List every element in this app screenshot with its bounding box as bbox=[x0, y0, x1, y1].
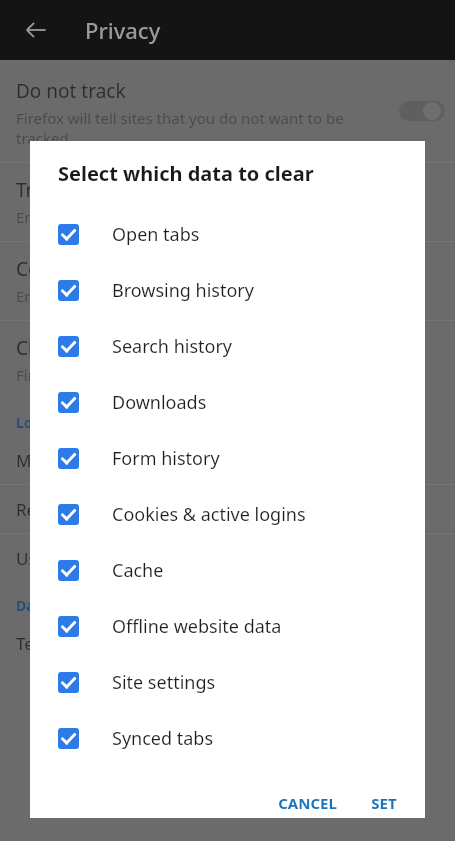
staticText: Form history bbox=[112, 446, 220, 471]
staticText: CANCEL bbox=[278, 793, 337, 810]
staticText: Telemetry bbox=[16, 632, 96, 655]
button[interactable]: Manage logins bbox=[0, 436, 455, 484]
button[interactable]: Request desktop site bbox=[0, 485, 455, 533]
staticText: Downloads bbox=[112, 390, 207, 415]
button[interactable]: Usage data bbox=[0, 534, 455, 582]
button[interactable]: Cache bbox=[30, 542, 425, 598]
staticText: Synced tabs bbox=[112, 726, 214, 751]
staticText: Browsing history bbox=[112, 278, 254, 303]
button[interactable]: Downloads bbox=[30, 374, 425, 430]
button[interactable]: Open tabs bbox=[30, 206, 425, 262]
staticText: Firefox will tell sites that you do not … bbox=[16, 108, 385, 148]
staticText: Clear private data bbox=[16, 335, 175, 361]
staticText: Privacy bbox=[85, 15, 161, 45]
staticText: Usage data bbox=[16, 547, 107, 570]
staticText: Firefox will delete the data that you se… bbox=[16, 365, 313, 385]
button[interactable]: Cookies & active logins bbox=[30, 486, 425, 542]
button[interactable]: Form history bbox=[30, 430, 425, 486]
button[interactable]: Back bbox=[12, 6, 60, 54]
staticText: Open tabs bbox=[112, 222, 200, 247]
button[interactable]: Browsing history bbox=[30, 262, 425, 318]
staticText: Select which data to clear bbox=[58, 160, 314, 187]
staticText: Request desktop site bbox=[16, 498, 183, 521]
staticText: SET bbox=[371, 793, 397, 810]
staticText: Cookies bbox=[16, 256, 86, 282]
staticText: Cookies & active logins bbox=[112, 502, 306, 527]
staticText: Manage logins bbox=[16, 449, 134, 472]
staticText: Offline website data bbox=[112, 614, 282, 639]
button[interactable]: Clear private data bbox=[0, 321, 455, 399]
button[interactable]: Do not track bbox=[0, 60, 455, 162]
button[interactable]: Site settings bbox=[30, 654, 425, 710]
button[interactable]: Telemetry bbox=[0, 619, 455, 667]
button[interactable]: Offline website data bbox=[30, 598, 425, 654]
button[interactable]: SET bbox=[367, 785, 401, 818]
button[interactable]: Cookies bbox=[0, 242, 455, 320]
staticText: Data Choices bbox=[16, 596, 107, 615]
button[interactable]: Tracking Protection bbox=[0, 163, 455, 241]
staticText: Logins bbox=[16, 413, 62, 432]
button[interactable]: Synced tabs bbox=[30, 710, 425, 766]
staticText: Cache bbox=[112, 558, 164, 583]
staticText: Enabled bbox=[16, 286, 73, 306]
button[interactable]: CANCEL bbox=[274, 785, 341, 818]
staticText: Do not track bbox=[16, 78, 126, 104]
button[interactable]: Search history bbox=[30, 318, 425, 374]
staticText: Search history bbox=[112, 334, 233, 359]
staticText: Enabled in Private Browsing bbox=[16, 207, 213, 227]
staticText: Tracking Protection bbox=[16, 177, 189, 203]
staticText: Site settings bbox=[112, 670, 216, 695]
